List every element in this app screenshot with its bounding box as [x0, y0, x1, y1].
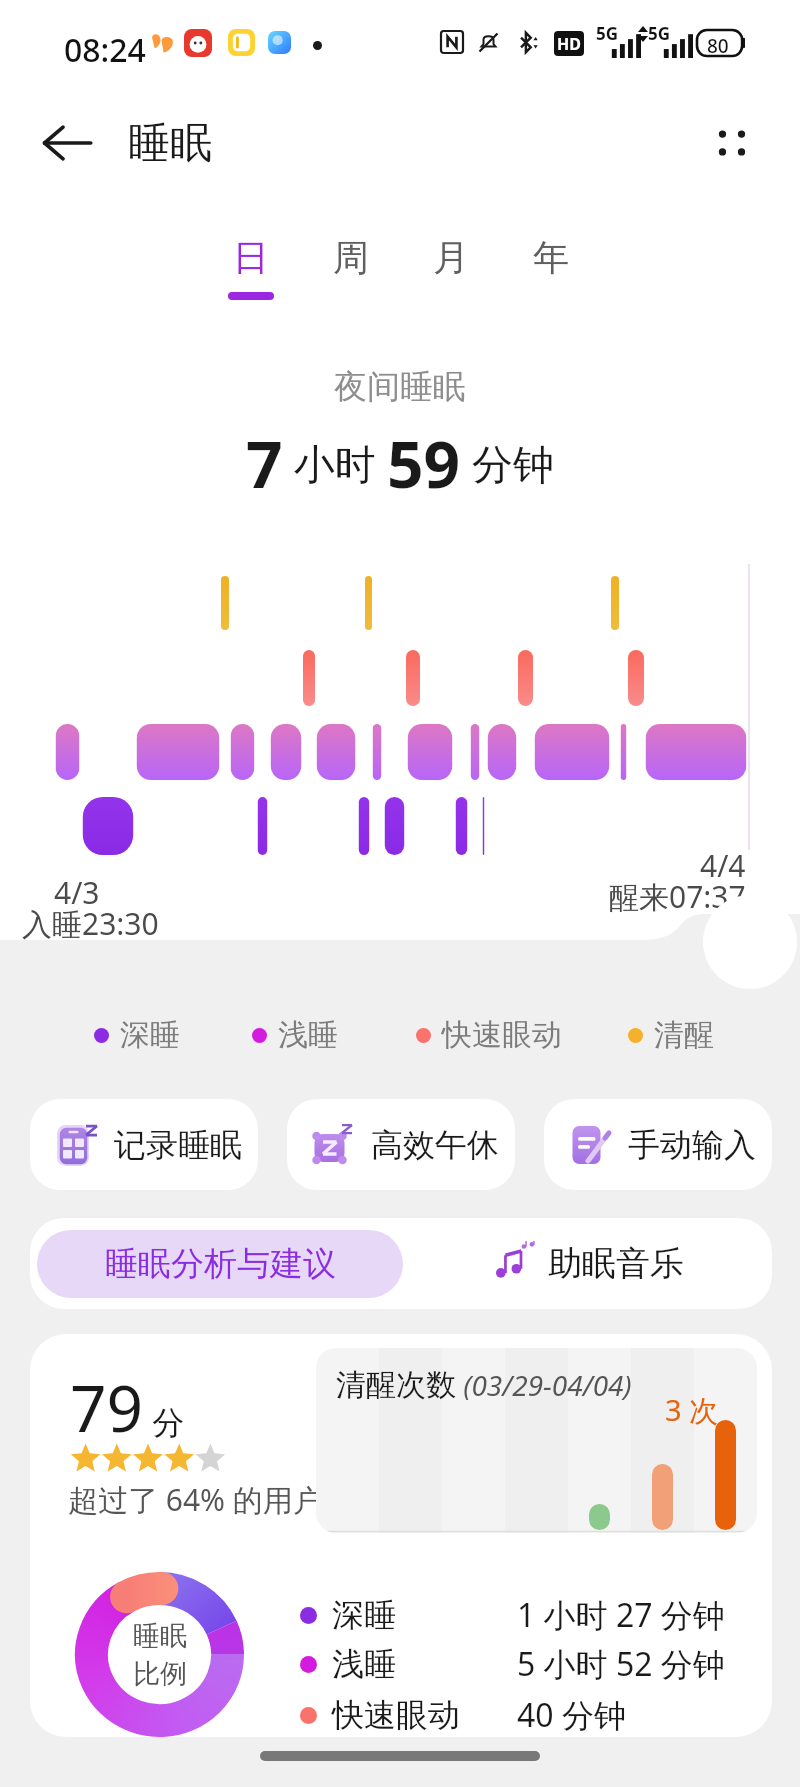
button[interactable]: 睡眠分析与建议: [37, 1230, 403, 1298]
staticText: 分: [144, 1400, 185, 1444]
staticText: 08:24: [64, 28, 146, 72]
staticText: 4/4: [700, 845, 746, 886]
staticText: 夜间睡眠: [334, 366, 466, 408]
staticText: 1 小时 27 分钟: [517, 1593, 725, 1637]
staticText: 记录睡眠: [114, 1125, 242, 1165]
staticText: 浅睡: [278, 1016, 338, 1054]
staticText: 40 分钟: [517, 1693, 626, 1737]
button[interactable]: 月: [401, 235, 501, 325]
button[interactable]: Back: [34, 110, 100, 176]
button[interactable]: 日: [201, 235, 301, 325]
staticText: 快速眼动: [442, 1016, 562, 1054]
staticText: 3 次: [665, 1390, 719, 1430]
staticText: 快速眼动: [332, 1695, 517, 1735]
staticText: 59: [387, 420, 461, 496]
staticText: 助眠音乐: [548, 1242, 684, 1285]
button[interactable]: 手动输入: [544, 1099, 772, 1190]
staticText: 分钟: [461, 435, 554, 491]
button[interactable]: 高效午休: [287, 1099, 515, 1190]
staticText: 日: [233, 235, 269, 280]
staticText: 睡眠: [133, 1619, 187, 1653]
staticText: 醒来07:37: [609, 876, 746, 917]
staticText: 清醒次数: [336, 1366, 456, 1404]
staticText: 小时: [283, 435, 387, 491]
button[interactable]: 助眠音乐: [403, 1218, 772, 1309]
staticText: 超过了 64% 的用户: [68, 1479, 323, 1520]
staticText: 入睡23:30: [22, 903, 159, 944]
staticText: HD: [557, 33, 581, 55]
staticText: 深睡: [332, 1595, 517, 1635]
staticText: 79: [70, 1364, 144, 1451]
button[interactable]: 年: [501, 235, 601, 325]
staticText: 浅睡: [332, 1644, 517, 1684]
staticText: 清醒: [654, 1016, 714, 1054]
staticText: 睡眠: [128, 117, 212, 170]
staticText: 深睡: [120, 1016, 180, 1054]
staticText: 80: [707, 33, 729, 59]
staticText: 比例: [133, 1657, 187, 1691]
staticText: (03/29-04/04): [456, 1366, 632, 1404]
staticText: 年: [533, 235, 569, 280]
button[interactable]: More options: [704, 115, 760, 171]
staticText: 5 小时 52 分钟: [517, 1642, 725, 1686]
staticText: 周: [333, 235, 369, 280]
button[interactable]: 周: [301, 235, 401, 325]
staticText: 睡眠分析与建议: [105, 1243, 336, 1285]
staticText: 5G: [596, 22, 619, 45]
button[interactable]: 记录睡眠: [30, 1099, 258, 1190]
staticText: 月: [433, 235, 469, 280]
staticText: 手动输入: [628, 1125, 756, 1165]
staticText: 5G: [648, 22, 671, 45]
staticText: 高效午休: [371, 1125, 499, 1165]
staticText: 7: [246, 420, 283, 496]
staticText: 4/3: [54, 872, 100, 913]
